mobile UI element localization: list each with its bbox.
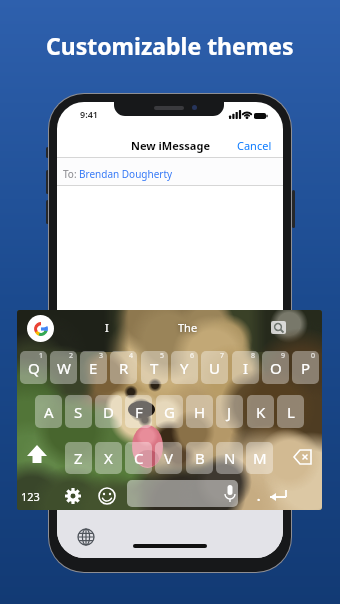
button[interactable]: Cancel [237, 138, 272, 153]
staticText: O [270, 358, 282, 378]
staticText: J [227, 402, 232, 422]
staticText: D [103, 402, 114, 422]
button[interactable]: G [156, 395, 183, 428]
staticText: Q [28, 358, 40, 378]
button[interactable]: X [95, 442, 122, 474]
staticText: M [253, 448, 267, 468]
button[interactable]: S [65, 395, 92, 428]
button[interactable]: Y [171, 351, 198, 384]
button[interactable]: A [35, 395, 62, 428]
staticText: X [104, 448, 113, 468]
staticText: 8 [251, 351, 256, 361]
button[interactable]: N [216, 442, 243, 474]
button[interactable] [27, 315, 54, 342]
button[interactable]: To: [57, 158, 283, 185]
staticText: V [164, 448, 174, 468]
staticText: C [134, 448, 144, 468]
staticText: L [287, 402, 295, 422]
staticText: 9 [281, 351, 286, 361]
button[interactable]: U [201, 351, 228, 384]
button[interactable]: 123 [21, 489, 40, 504]
button[interactable]: C [125, 442, 152, 474]
staticText: Z [74, 448, 83, 468]
button[interactable]: Z [65, 442, 92, 474]
staticText: R [119, 358, 129, 378]
staticText: W [57, 358, 71, 378]
button[interactable]: F [125, 395, 152, 428]
button[interactable]: T [141, 351, 168, 384]
staticText: . [257, 488, 261, 504]
staticText: To: [63, 167, 77, 181]
button[interactable]: B [186, 442, 213, 474]
button[interactable]: W [50, 351, 77, 384]
staticText: F [135, 402, 143, 422]
staticText: Y [180, 358, 189, 378]
staticText: 0 [311, 351, 316, 361]
button[interactable]: Q [20, 351, 47, 384]
staticText: Cancel [237, 138, 272, 153]
button[interactable]: D [95, 395, 122, 428]
button[interactable]: P [292, 351, 319, 384]
button[interactable] [127, 480, 238, 507]
staticText: U [209, 358, 220, 378]
button[interactable]: R [110, 351, 137, 384]
staticText: N [224, 448, 236, 468]
staticText: 2 [69, 351, 74, 361]
button[interactable]: E [80, 351, 107, 384]
staticText: 7 [220, 351, 225, 361]
staticText: 6 [190, 351, 195, 361]
staticText: New iMessage [131, 138, 210, 153]
staticText: S [74, 402, 83, 422]
staticText: B [195, 448, 205, 468]
staticText: 4 [129, 351, 134, 361]
staticText: Brendan Dougherty [79, 167, 173, 181]
button[interactable]: M [246, 442, 273, 474]
staticText: Customizable themes [46, 30, 294, 61]
button[interactable]: The [178, 320, 198, 335]
button[interactable]: I [232, 351, 259, 384]
button[interactable]: K [247, 395, 274, 428]
staticText: P [301, 358, 311, 378]
button[interactable]: J [216, 395, 243, 428]
button[interactable]: V [155, 442, 182, 474]
button[interactable]: H [186, 395, 213, 428]
staticText: 1 [39, 351, 44, 361]
staticText: 9:41 [80, 108, 98, 120]
staticText: G [164, 402, 175, 422]
staticText: K [256, 402, 266, 422]
button[interactable]: L [277, 395, 304, 428]
staticText: E [89, 358, 98, 378]
button[interactable]: O [262, 351, 289, 384]
staticText: A [44, 402, 54, 422]
staticText: H [194, 402, 206, 422]
staticText: 5 [160, 351, 165, 361]
staticText: T [150, 358, 159, 378]
staticText: 3 [99, 351, 104, 361]
staticText: I [243, 358, 249, 378]
button[interactable]: I [105, 320, 109, 335]
